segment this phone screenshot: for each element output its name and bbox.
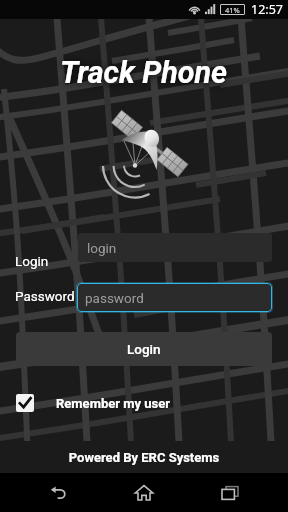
staticText: login: [87, 240, 117, 256]
staticText: password: [85, 290, 144, 306]
button[interactable]: password: [77, 283, 272, 312]
button[interactable]: login: [78, 233, 272, 262]
staticText: Track Phone: [60, 55, 228, 91]
staticText: Powered By ERC Systems: [0, 450, 288, 465]
button[interactable]: Remember my user: [0, 392, 288, 414]
button[interactable]: Back: [30, 473, 86, 512]
staticText: 41%: [225, 5, 240, 15]
staticText: Remember my user: [56, 396, 170, 411]
staticText: Login: [127, 341, 161, 357]
staticText: 12:57: [251, 1, 283, 18]
button[interactable]: Login: [16, 332, 272, 366]
button[interactable]: Home: [116, 473, 172, 512]
staticText: Login: [15, 253, 49, 269]
staticText: Password: [15, 288, 75, 304]
button[interactable]: Recent apps: [202, 473, 258, 512]
